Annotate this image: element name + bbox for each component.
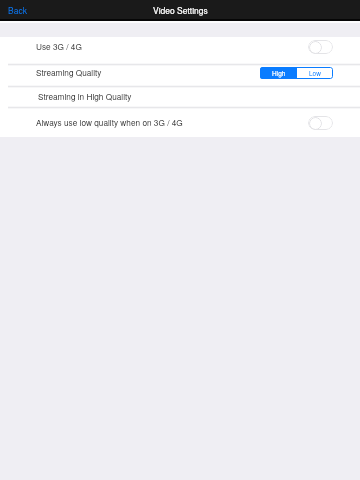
button[interactable]: Streaming Quality — [0, 64, 360, 86]
staticText: Streaming Quality — [36, 67, 102, 79]
staticText: Back — [8, 4, 27, 16]
button[interactable]: Back — [0, 0, 37, 20]
staticText: Streaming in High Quality — [38, 91, 132, 103]
button[interactable]: Use 3G / 4G — [0, 37, 360, 64]
button[interactable]: Use 3G / 4G — [308, 40, 333, 54]
staticText: Low — [309, 69, 321, 78]
button[interactable]: Always use low quality when on 3G / 4G — [308, 116, 333, 130]
button[interactable]: Always use low quality when on 3G / 4G — [0, 107, 360, 137]
staticText: Always use low quality when on 3G / 4G — [36, 117, 183, 129]
button[interactable]: Streaming in High Quality — [0, 86, 360, 107]
staticText: Video Settings — [153, 4, 208, 16]
button[interactable]: High — [260, 67, 297, 79]
button[interactable]: Low — [297, 67, 333, 79]
staticText: Use 3G / 4G — [36, 41, 82, 53]
staticText: High — [272, 69, 286, 78]
